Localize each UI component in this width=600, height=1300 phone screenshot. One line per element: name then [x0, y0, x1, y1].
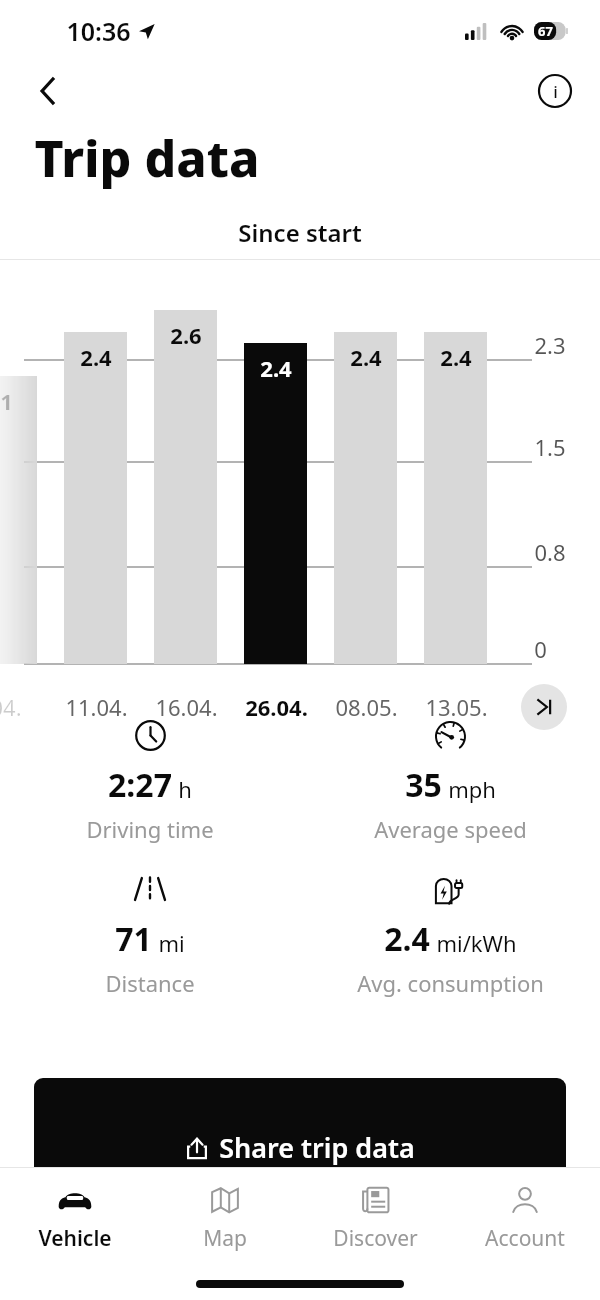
staticText: 10:36: [66, 14, 131, 48]
staticText: Discover: [333, 1224, 418, 1253]
staticText: Vehicle: [38, 1224, 112, 1253]
staticText: 1.5: [534, 432, 566, 462]
staticText: 2.4: [440, 342, 472, 372]
staticText: mi: [158, 928, 185, 958]
button[interactable]: Discover: [300, 1183, 450, 1253]
staticText: 71: [115, 917, 152, 961]
staticText: 2:27: [108, 763, 172, 807]
staticText: 0.8: [534, 537, 566, 567]
button[interactable]: 2.4: [300, 872, 600, 998]
button[interactable]: Vehicle: [0, 1183, 150, 1253]
staticText: mph: [448, 774, 496, 804]
button[interactable]: Share trip data: [34, 1078, 566, 1168]
staticText: 1: [0, 386, 13, 416]
staticText: 13.05.: [425, 692, 488, 722]
staticText: 04.: [0, 692, 22, 722]
staticText: 2.6: [170, 320, 202, 350]
staticText: 26.04.: [245, 692, 308, 722]
staticText: i: [553, 80, 558, 103]
button[interactable]: Info: [538, 74, 572, 108]
staticText: Since start: [238, 216, 362, 249]
staticText: Distance: [105, 968, 195, 998]
button[interactable]: 71: [0, 872, 300, 998]
staticText: 2.4: [80, 342, 112, 372]
staticText: 16.04.: [155, 692, 218, 722]
button[interactable]: Back: [26, 70, 68, 112]
button[interactable]: 35: [300, 718, 600, 844]
staticText: Share trip data: [219, 1129, 415, 1166]
staticText: 2.4: [384, 917, 430, 961]
staticText: 11.04.: [65, 692, 128, 722]
staticText: Avg. consumption: [357, 968, 544, 998]
staticText: Average speed: [374, 814, 527, 844]
button[interactable]: Next: [521, 684, 567, 730]
staticText: Trip data: [34, 124, 260, 192]
staticText: 35: [405, 763, 442, 807]
staticText: Account: [485, 1224, 565, 1253]
staticText: 2.4: [260, 353, 292, 383]
button[interactable]: Account: [450, 1183, 600, 1253]
staticText: Map: [203, 1224, 247, 1253]
staticText: 0: [534, 634, 547, 664]
staticText: 08.05.: [335, 692, 398, 722]
staticText: 2.4: [350, 342, 382, 372]
button[interactable]: 2:27: [0, 718, 300, 844]
staticText: 67: [538, 22, 553, 40]
button[interactable]: Since start: [0, 216, 600, 260]
staticText: h: [178, 774, 192, 804]
button[interactable]: Map: [150, 1183, 300, 1253]
staticText: Driving time: [86, 814, 214, 844]
staticText: 2.3: [534, 330, 566, 360]
staticText: mi/kWh: [436, 928, 517, 958]
